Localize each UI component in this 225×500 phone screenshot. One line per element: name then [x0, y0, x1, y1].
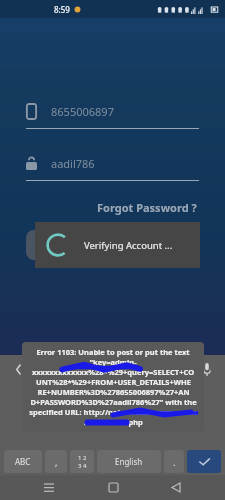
staticText: D+PASSWORD%3D%27aadil786%27" with the — [30, 397, 197, 407]
staticText: RE+NUMBER%3D%278655006897%27+AN — [37, 387, 190, 397]
staticText: . — [173, 456, 176, 468]
button[interactable]: Back — [162, 475, 190, 500]
staticText: Forgot Password ? — [97, 200, 197, 215]
button[interactable]: Enter — [187, 450, 221, 473]
button[interactable]: 1 2 — [70, 450, 94, 473]
staticText: 8:59 — [54, 4, 70, 15]
button[interactable]: Translate — [134, 359, 154, 379]
button[interactable]: Forgot Password ? — [95, 197, 199, 218]
button[interactable]: Back — [8, 359, 28, 379]
staticText: SIGN UP — [139, 238, 179, 252]
button[interactable]: , — [45, 450, 67, 473]
button[interactable]: English — [97, 450, 161, 473]
button[interactable]: ABC — [4, 450, 42, 473]
button[interactable]: Voice input — [197, 359, 217, 379]
button[interactable]: LOGIN — [26, 230, 106, 260]
staticText: aadil786 — [51, 156, 95, 171]
staticText: 8655006897 — [51, 104, 114, 119]
button[interactable]: Stickers — [39, 359, 59, 379]
button[interactable]: Settings — [103, 359, 123, 379]
button[interactable]: Recents — [35, 475, 63, 500]
button[interactable]: More options — [166, 359, 186, 379]
staticText: ABC — [15, 456, 31, 467]
button[interactable]: Home — [99, 475, 127, 500]
staticText: , — [55, 456, 58, 468]
staticText: UNT%28*%29+FROM+USER_DETAILS+WHE — [36, 377, 191, 387]
staticText: /xxxxxxxxx.php — [84, 417, 143, 427]
staticText: 1 2 — [78, 454, 87, 462]
staticText: 3 4 — [78, 462, 87, 470]
button[interactable]: SIGN UP — [118, 230, 199, 260]
button[interactable]: . — [164, 450, 184, 473]
staticText: "key=admin-xxxxxxxxxxxxx%28*%29+query=SE… — [28, 357, 198, 377]
staticText: Error 1103: Unable to post or put the te… — [36, 347, 190, 357]
staticText: GIF — [74, 363, 89, 375]
staticText: LOGIN — [50, 238, 82, 252]
button[interactable]: GIF — [71, 363, 92, 375]
staticText: English — [115, 456, 143, 467]
staticText: specified URL: http://networkxxxxxxxxxxx… — [29, 407, 197, 417]
staticText: Verifying Account ... — [84, 239, 173, 252]
